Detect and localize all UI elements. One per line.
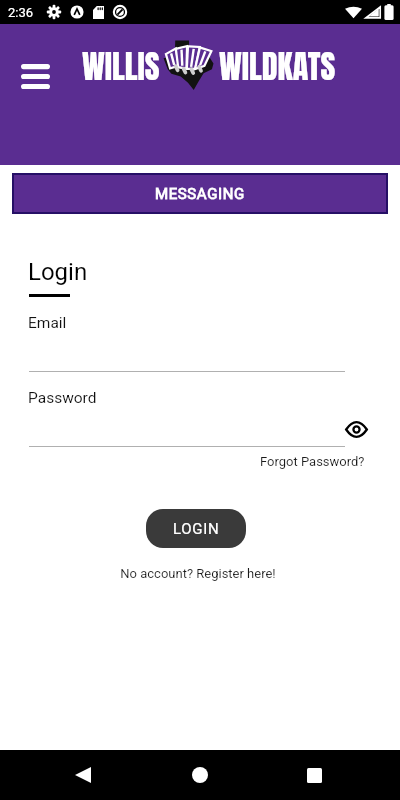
staticText: WILLIS [82,42,160,90]
button[interactable]: Show password [342,415,370,443]
staticText: Password [28,389,97,407]
button[interactable]: MESSAGING [14,175,386,212]
button[interactable]: Recents [290,751,338,799]
staticText: No account? Register here! [120,566,276,581]
staticText: WILDKATS [219,42,336,90]
button[interactable]: Back [59,751,107,799]
button[interactable]: Forgot Password? [260,454,365,469]
staticText: LOGIN [173,520,220,538]
staticText: Email [28,314,67,332]
button[interactable]: LOGIN [146,509,246,548]
staticText: Login [28,258,88,286]
button[interactable]: No account? Register here! [120,566,276,581]
staticText: 2:36 [8,5,34,20]
button[interactable]: Home [176,751,224,799]
button[interactable]: Menu [14,55,56,97]
staticText: MESSAGING [155,185,245,203]
